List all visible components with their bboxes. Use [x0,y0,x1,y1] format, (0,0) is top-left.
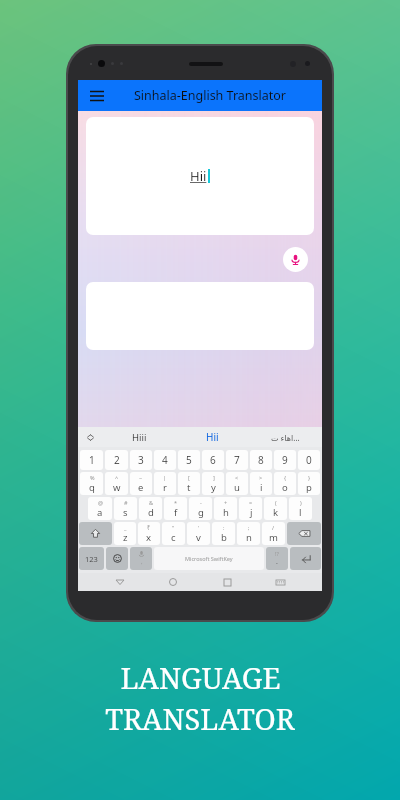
button[interactable]: 5 [178,450,200,470]
staticText: b [221,531,227,544]
staticText: Sinhala-English Translator [134,87,287,104]
button[interactable]: 4 [154,450,176,470]
button[interactable] [290,547,321,570]
staticText: 123 [85,554,98,564]
button[interactable]: Recent apps [216,573,238,591]
button[interactable]: 0 [298,450,320,470]
button[interactable]: @ [88,497,112,520]
staticText: | [163,474,167,481]
staticText: _ [124,524,127,531]
button[interactable]: Backspace [287,522,321,545]
staticText: 5 [186,453,192,467]
staticText: k [273,506,279,519]
button[interactable]: ~ [130,472,152,495]
staticText: 1 [89,453,95,467]
staticText: - [200,499,202,506]
button[interactable]: Open navigation menu [78,80,322,111]
button[interactable]: > [250,472,272,495]
button[interactable]: اهاء ت... [249,427,322,447]
button[interactable]: , [130,547,152,570]
button[interactable]: 3 [130,450,152,470]
button[interactable]: - [189,497,212,520]
staticText: p [306,481,312,494]
button[interactable]: 6 [202,450,224,470]
button[interactable]: { [274,472,296,495]
staticText: } [308,474,311,481]
staticText: = [249,499,253,506]
button[interactable] [106,547,128,570]
button[interactable]: Speak to translate [283,247,308,272]
staticText: / [272,524,275,531]
button[interactable]: Open navigation menu [86,85,108,107]
button[interactable]: % [80,472,103,495]
button[interactable]: 7 [226,450,248,470]
button[interactable]: _ [114,522,136,545]
staticText: ; [248,524,250,531]
staticText: l [299,506,302,519]
staticText: * [174,499,178,506]
staticText: ) [300,499,302,506]
staticText: a [97,506,103,519]
staticText: 3 [138,453,144,467]
button[interactable]: [ [178,472,200,495]
staticText: s [123,506,128,519]
button[interactable]: 8 [250,450,272,470]
button[interactable]: 123 [79,547,104,570]
staticText: { [284,474,287,481]
button[interactable]: 2 [105,450,128,470]
button[interactable]: & [139,497,162,520]
button[interactable]: : [212,522,235,545]
staticText: ₹ [147,524,151,531]
button[interactable]: ] [202,472,224,495]
button[interactable]: 9 [274,450,296,470]
button[interactable]: + [214,497,237,520]
staticText: " [172,524,175,531]
button[interactable]: ; [237,522,260,545]
staticText: % [90,474,95,481]
button[interactable]: = [239,497,262,520]
button[interactable]: # [114,497,137,520]
staticText: ] [213,474,215,481]
button[interactable]: Hii [86,117,314,235]
staticText: !? [275,550,279,557]
button[interactable]: < [226,472,248,495]
button[interactable]: Switch keyboard [269,573,291,591]
button[interactable]: ^ [105,472,128,495]
staticText: Hii [206,430,219,444]
staticText: w [113,481,121,494]
button[interactable]: 1 [80,450,103,470]
staticText: & [149,499,154,506]
button[interactable]: ₹ [138,522,160,545]
button[interactable]: / [262,522,285,545]
staticText: j [250,506,253,519]
staticText: 9 [282,453,288,467]
staticText: : [223,524,225,531]
staticText: Hiii [132,431,147,444]
staticText: 2 [114,453,120,467]
staticText: y [211,481,216,494]
staticText: 4 [162,453,168,467]
button[interactable]: Space [154,547,264,570]
button[interactable]: * [164,497,187,520]
button[interactable]: } [298,472,320,495]
button[interactable]: Back [109,573,131,591]
button[interactable]: !? [266,547,288,570]
button[interactable]: Home [162,573,184,591]
button[interactable]: | [154,472,176,495]
button[interactable]: Hii [176,427,249,447]
staticText: 8 [258,453,264,467]
staticText: TRANSLATOR [105,699,295,738]
button[interactable]: Expand suggestions [78,427,102,447]
staticText: ( [275,499,277,506]
button[interactable]: ' [187,522,210,545]
staticText: Microsoft SwiftKey [185,555,233,562]
staticText: + [224,499,228,506]
staticText: 0 [306,453,312,467]
staticText: f [174,506,178,519]
button[interactable]: ( [264,497,287,520]
button[interactable]: Shift [79,522,112,545]
button[interactable]: ) [289,497,312,520]
button[interactable]: Hiii [102,427,176,447]
button[interactable]: " [162,522,185,545]
